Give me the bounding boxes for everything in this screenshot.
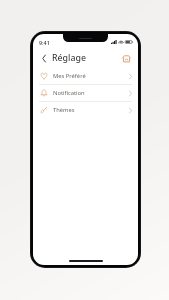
button[interactable]: Thèmes — [33, 102, 138, 118]
staticText: Réglage — [52, 52, 86, 64]
staticText: Thèmes — [53, 106, 75, 114]
button[interactable]: Notification — [33, 85, 138, 101]
staticText: Notification — [53, 89, 85, 97]
button[interactable]: Back — [38, 53, 49, 64]
staticText: Mes Préféré — [53, 72, 86, 80]
button[interactable]: Mes Préféré — [33, 68, 138, 84]
button[interactable]: Shop — [120, 52, 133, 65]
staticText: 9:41 — [39, 39, 50, 46]
